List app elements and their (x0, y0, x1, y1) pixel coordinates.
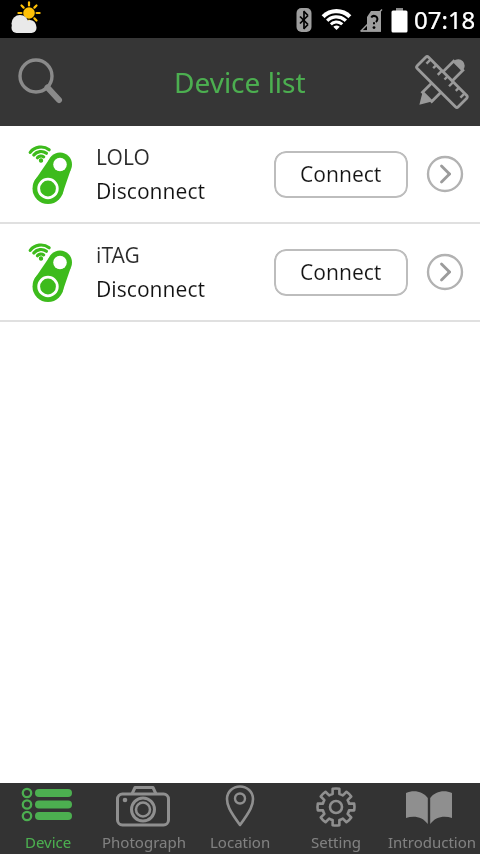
button[interactable]: Setting (288, 783, 384, 854)
button[interactable]: Photograph (96, 783, 192, 854)
staticText: Photograph (102, 832, 186, 852)
button[interactable]: Connect (274, 249, 408, 296)
staticText: Device list (174, 63, 306, 101)
button[interactable] (12, 55, 66, 109)
staticText: Location (210, 832, 271, 852)
staticText: Connect (300, 258, 382, 287)
button[interactable]: Connect (274, 151, 408, 198)
staticText: LOLO (96, 143, 150, 172)
staticText: Disconnect (96, 275, 206, 304)
staticText: Connect (300, 160, 382, 189)
button[interactable]: Introduction (384, 783, 480, 854)
button[interactable] (414, 54, 470, 110)
button[interactable]: Location (192, 783, 288, 854)
staticText: 07:18 (414, 3, 476, 36)
button[interactable] (426, 155, 464, 193)
staticText: Device (25, 832, 72, 852)
staticText: Introduction (388, 832, 477, 852)
staticText: Setting (311, 832, 361, 852)
button[interactable]: Device (0, 783, 96, 854)
button[interactable] (426, 253, 464, 291)
button[interactable]: LOLO (0, 126, 480, 222)
button[interactable]: iTAG (0, 224, 480, 320)
staticText: Disconnect (96, 177, 206, 206)
staticText: iTAG (96, 241, 140, 270)
